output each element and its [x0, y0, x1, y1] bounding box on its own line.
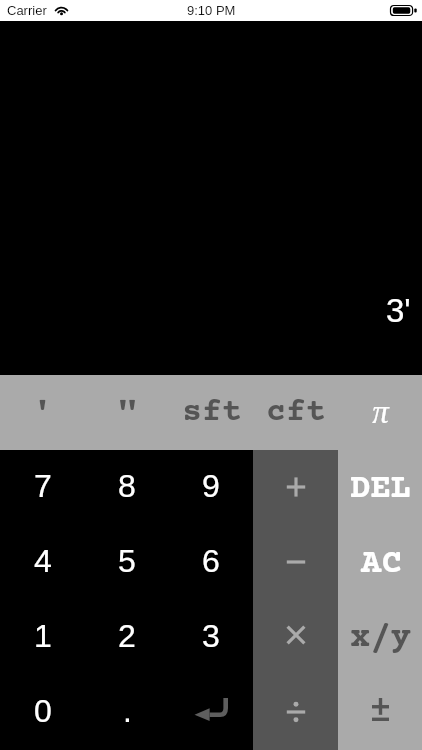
button[interactable]: 0	[0, 675, 85, 750]
button[interactable]: 5	[85, 525, 169, 600]
button[interactable]: Enter	[169, 675, 253, 750]
staticText: 7	[34, 468, 52, 504]
staticText: 3	[202, 618, 220, 654]
staticText: x/y	[350, 619, 412, 657]
button[interactable]: AC	[338, 525, 422, 600]
button[interactable]: 9	[169, 450, 253, 525]
button[interactable]: Add	[253, 450, 338, 525]
staticText: "	[117, 394, 138, 433]
button[interactable]: Plus minus sign	[338, 675, 422, 750]
staticText: 3'	[386, 292, 411, 329]
staticText: 5	[118, 543, 136, 579]
staticText: Carrier	[7, 3, 47, 18]
button[interactable]: 7	[0, 450, 85, 525]
button[interactable]: Multiply	[253, 600, 338, 675]
button[interactable]: π	[338, 375, 422, 450]
button[interactable]: 8	[85, 450, 169, 525]
button[interactable]: "	[85, 375, 170, 450]
button[interactable]: 3	[169, 600, 253, 675]
staticText: 2	[118, 618, 136, 654]
button[interactable]: cft	[254, 375, 338, 450]
staticText: 1	[34, 618, 52, 654]
button[interactable]: '	[0, 375, 85, 450]
button[interactable]: Subtract	[253, 525, 338, 600]
staticText: 9:10 PM	[187, 3, 236, 18]
staticText: 8	[118, 468, 136, 504]
button[interactable]: 4	[0, 525, 85, 600]
button[interactable]: DEL	[338, 450, 422, 525]
staticText: .	[123, 693, 132, 729]
staticText: 9	[202, 468, 220, 504]
staticText: 4	[34, 543, 52, 579]
staticText: '	[32, 394, 53, 433]
button[interactable]: 6	[169, 525, 253, 600]
staticText: 0	[34, 693, 52, 729]
button[interactable]: x/y	[338, 600, 422, 675]
staticText: cft	[266, 394, 326, 431]
button[interactable]: 1	[0, 600, 85, 675]
button[interactable]: Divide	[253, 675, 338, 750]
staticText: sft	[182, 394, 242, 431]
button[interactable]: sft	[170, 375, 254, 450]
staticText: π	[372, 394, 389, 431]
staticText: 6	[202, 543, 220, 579]
button[interactable]: .	[85, 675, 169, 750]
staticText: DEL	[350, 470, 412, 508]
staticText: AC	[361, 545, 402, 583]
button[interactable]: 2	[85, 600, 169, 675]
